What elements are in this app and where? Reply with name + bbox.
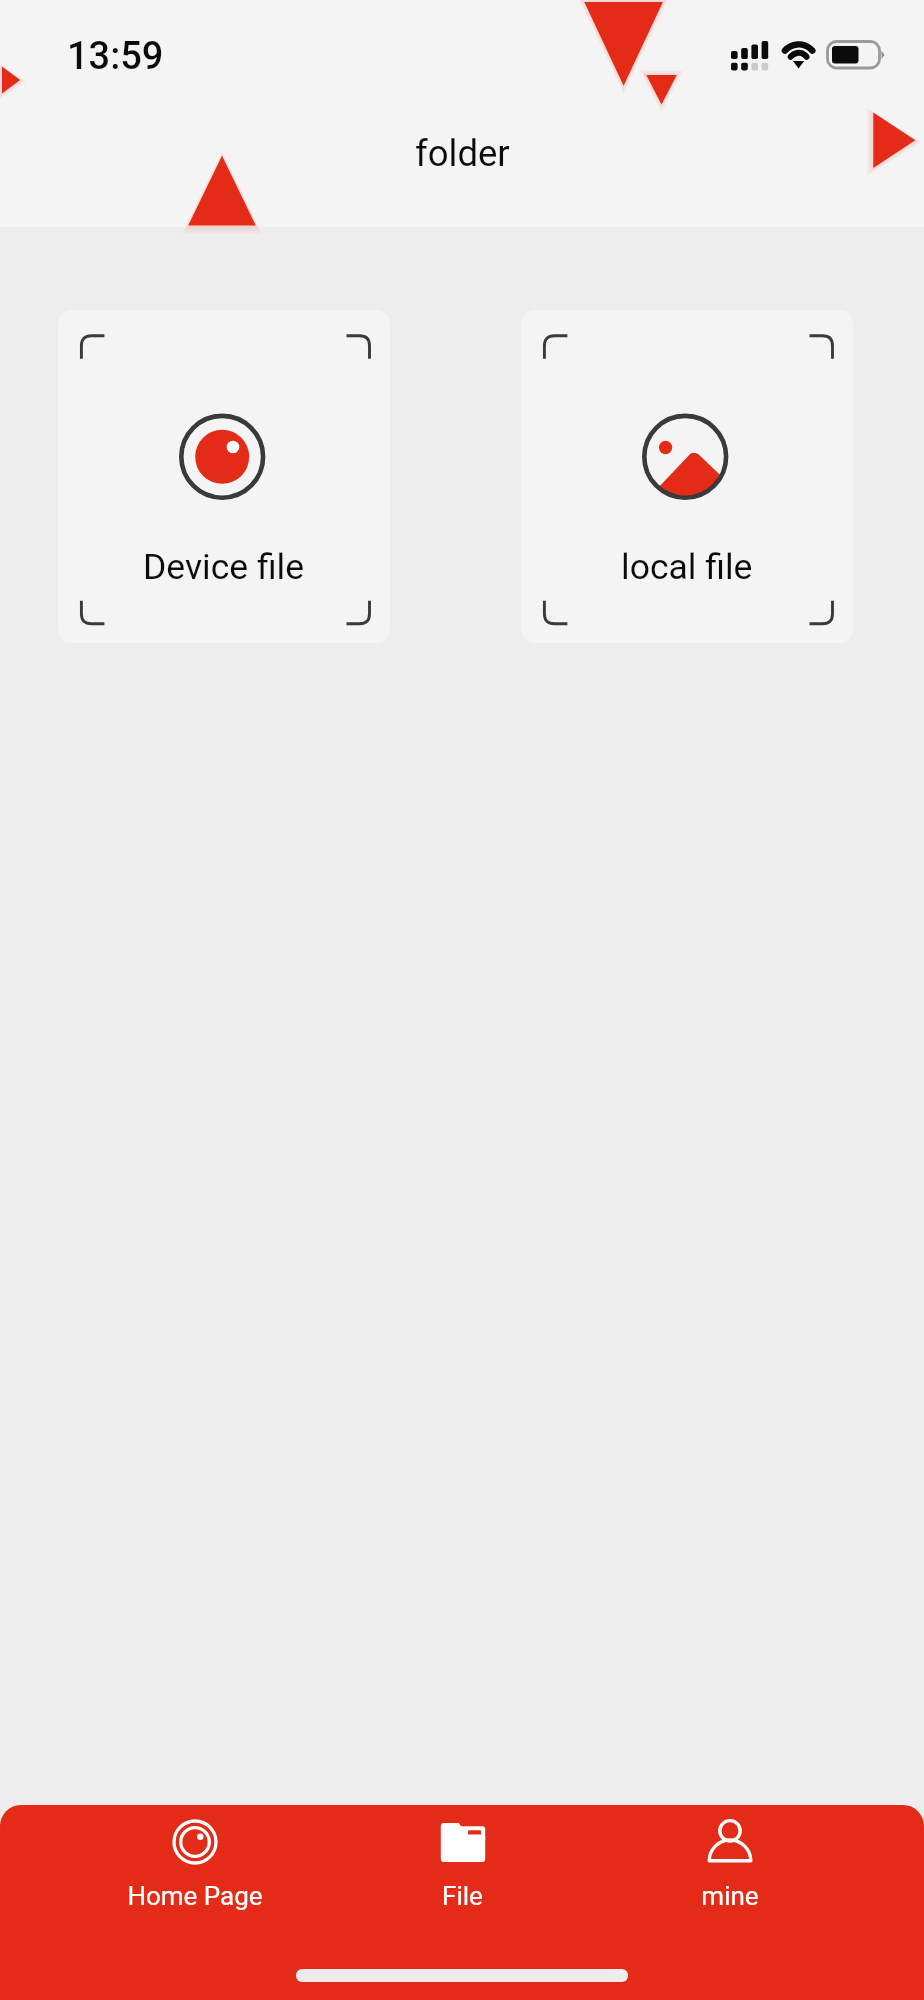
staticText: Home Page: [127, 1881, 263, 1911]
staticText: 13:59: [67, 34, 164, 79]
button[interactable]: File: [329, 1805, 596, 1945]
button[interactable]: Device file: [58, 310, 390, 643]
button[interactable]: Home Page: [61, 1805, 329, 1945]
staticText: folder: [415, 132, 510, 175]
staticText: local file: [621, 546, 753, 588]
staticText: mine: [701, 1881, 759, 1911]
button[interactable]: local file: [521, 310, 853, 643]
staticText: File: [442, 1881, 483, 1911]
staticText: Device file: [143, 546, 305, 588]
button[interactable]: mine: [596, 1805, 863, 1945]
